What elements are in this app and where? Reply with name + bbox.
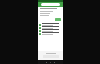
- button[interactable]: [38, 26, 63, 29]
- button[interactable]: [38, 29, 63, 32]
- button[interactable]: [38, 23, 63, 26]
- button[interactable]: Search: [41, 3, 60, 6]
- button[interactable]: Primary action: [55, 18, 61, 21]
- button[interactable]: [38, 32, 63, 35]
